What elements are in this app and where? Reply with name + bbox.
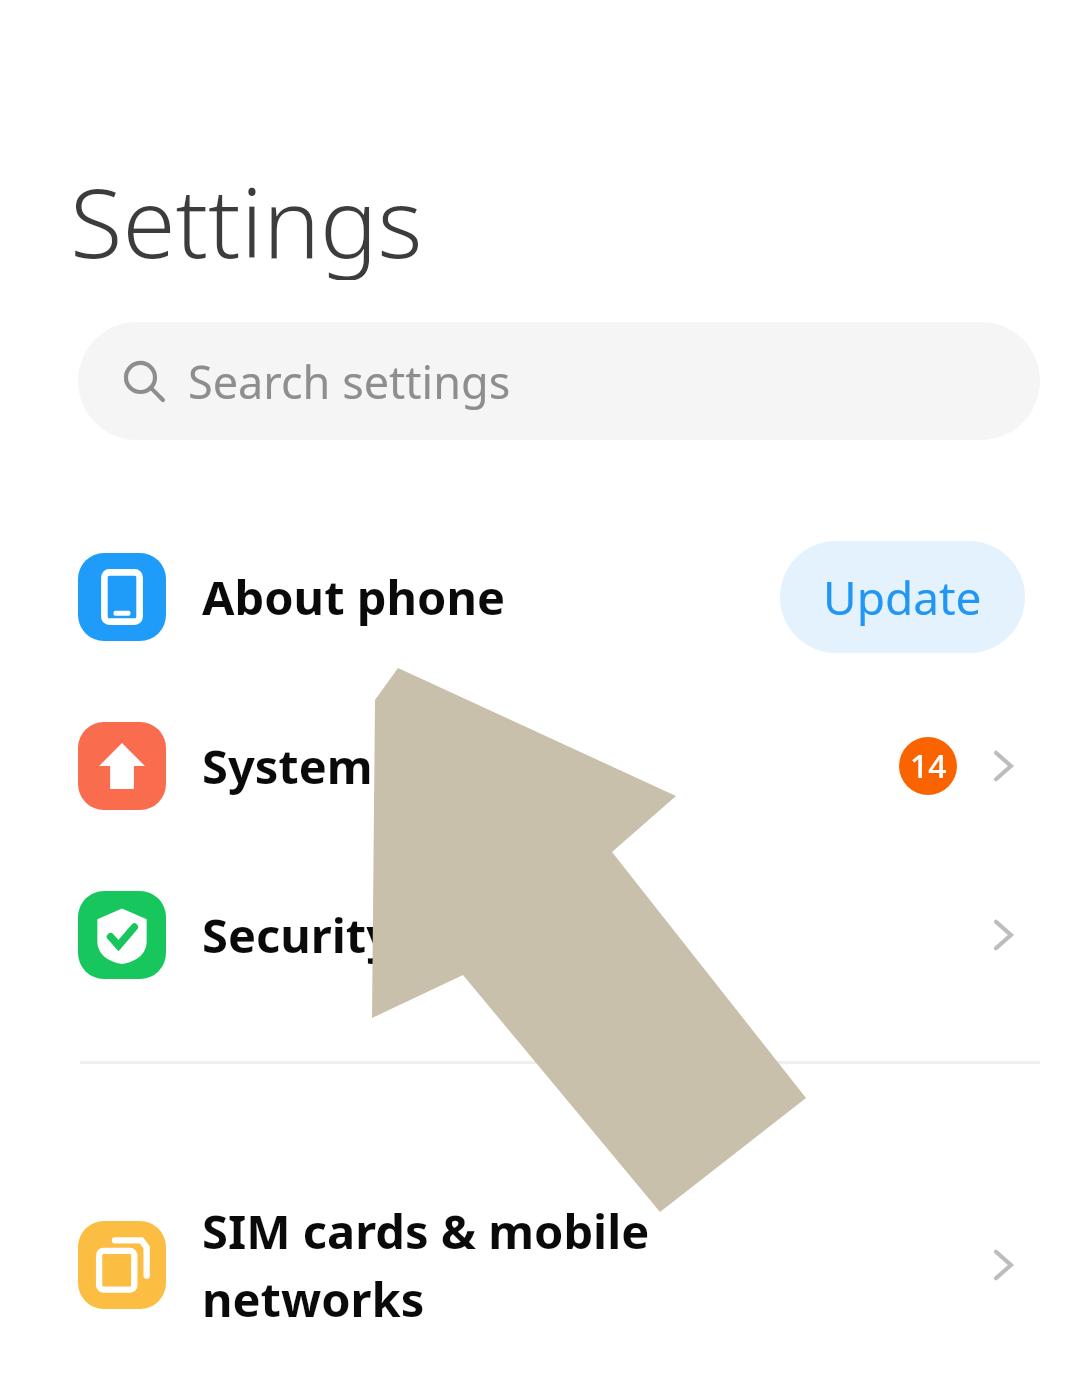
staticText: Settings [70,155,423,280]
button[interactable]: System updater [0,699,1080,833]
staticText: SIM cards & mobile networks [202,1199,650,1331]
staticText: System updater [202,734,573,798]
other: Open [981,744,1025,788]
other: Open [981,913,1025,957]
button[interactable]: SIM cards & mobile networks [0,1185,1080,1345]
button[interactable]: Security [0,868,1080,1002]
staticText: Update [823,566,982,629]
staticText: Security [202,903,394,967]
staticText: About phone [202,565,506,629]
staticText: 14 [910,744,947,788]
button[interactable]: Search settings [78,322,1040,440]
button[interactable]: About phone [0,530,1080,664]
button[interactable]: Update [780,541,1025,653]
other: Open [981,1243,1025,1287]
staticText: Search settings [188,351,511,412]
